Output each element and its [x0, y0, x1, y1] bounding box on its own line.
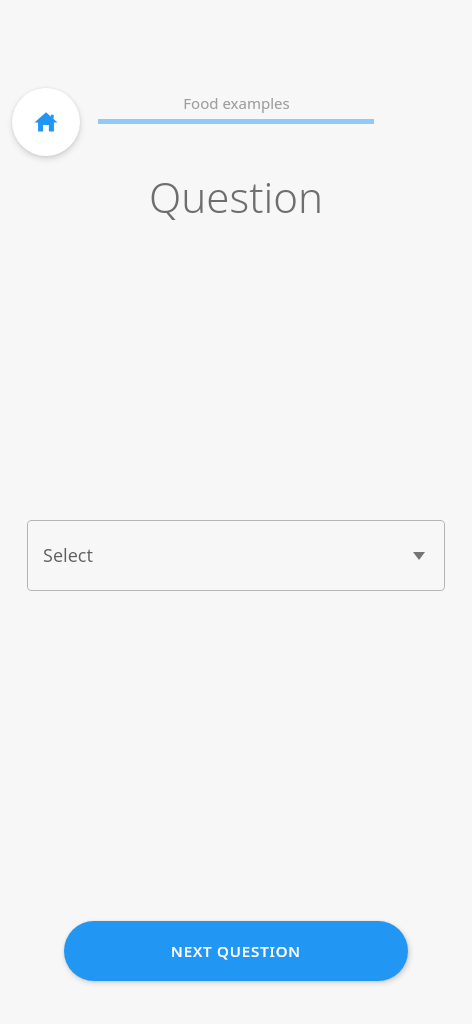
staticText: Food examples [183, 93, 290, 113]
button[interactable]: NEXT QUESTION [64, 921, 408, 981]
staticText: NEXT QUESTION [171, 941, 301, 961]
button[interactable]: Home [12, 88, 80, 156]
staticText: Question [149, 168, 323, 225]
button[interactable]: Select [27, 520, 445, 591]
staticText: Select [43, 543, 93, 568]
